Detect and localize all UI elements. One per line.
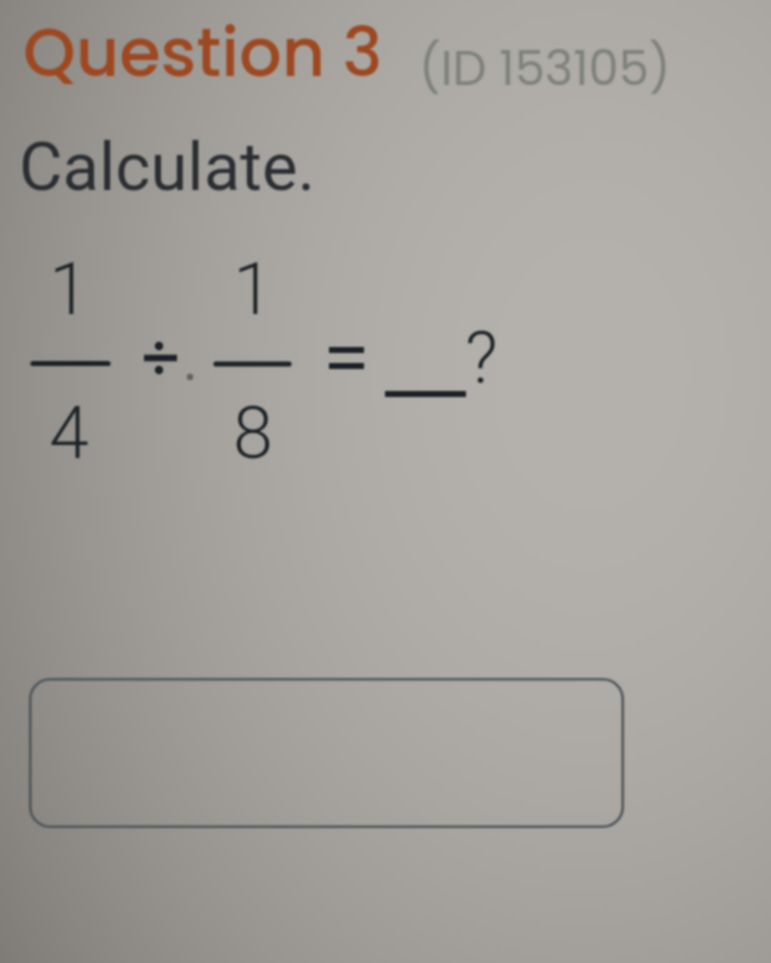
button[interactable]: Answer field — [29, 678, 624, 828]
staticText: 4 — [49, 391, 89, 475]
staticText: Calculate. — [19, 128, 316, 207]
staticText: 8 — [233, 391, 273, 475]
staticText: 1 — [233, 247, 273, 331]
staticText: 1 — [49, 247, 89, 331]
staticText: ? — [465, 316, 498, 400]
staticText: Question 3 — [23, 6, 383, 100]
staticText: (ID 153105) — [419, 35, 671, 102]
